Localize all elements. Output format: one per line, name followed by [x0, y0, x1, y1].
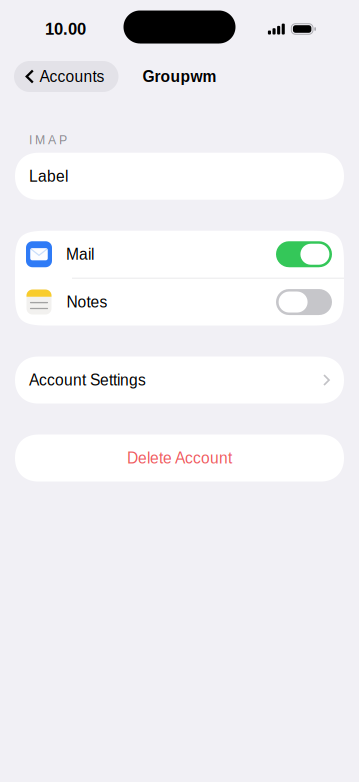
button[interactable]: Mail [15, 231, 344, 278]
staticText: IMAP [29, 133, 67, 147]
staticText: Accounts [39, 68, 104, 85]
staticText: Groupwm [142, 68, 216, 85]
button[interactable]: Notes [15, 278, 344, 325]
staticText: Delete Account [127, 449, 232, 467]
staticText: Label [29, 167, 68, 185]
staticText: Mail [66, 245, 94, 263]
button[interactable]: Delete Account [15, 434, 344, 481]
button[interactable]: Account Settings [15, 356, 344, 403]
staticText: 10.00 [45, 20, 86, 38]
button[interactable]: Accounts [14, 61, 118, 92]
staticText: Notes [66, 293, 107, 311]
staticText: Account Settings [29, 371, 146, 389]
